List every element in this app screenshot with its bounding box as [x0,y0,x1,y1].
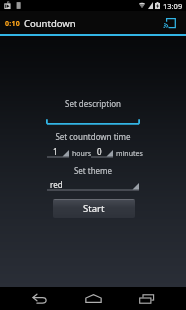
button[interactable]: Back [26,290,52,307]
staticText: Start [83,202,105,215]
staticText: red [50,179,63,190]
button[interactable]: Recents [133,290,159,307]
staticText: minutes [116,149,143,159]
button[interactable]: 1 [47,145,69,158]
staticText: hours [72,149,92,159]
staticText: Countdown [24,17,76,30]
button[interactable]: Description field [46,111,140,125]
button[interactable]: red [47,178,139,191]
staticText: 13:09 [163,1,183,11]
button[interactable]: 0 [91,145,113,158]
button[interactable]: Cast [158,13,180,34]
staticText: Set countdown time [0,131,186,142]
staticText: 1 [53,146,58,157]
staticText: 0:10 [5,19,21,29]
staticText: Set theme [0,165,186,176]
staticText: 0 [97,146,102,157]
button[interactable]: Home [80,290,106,307]
button[interactable]: Start [53,199,135,218]
staticText: Set description [0,98,186,109]
